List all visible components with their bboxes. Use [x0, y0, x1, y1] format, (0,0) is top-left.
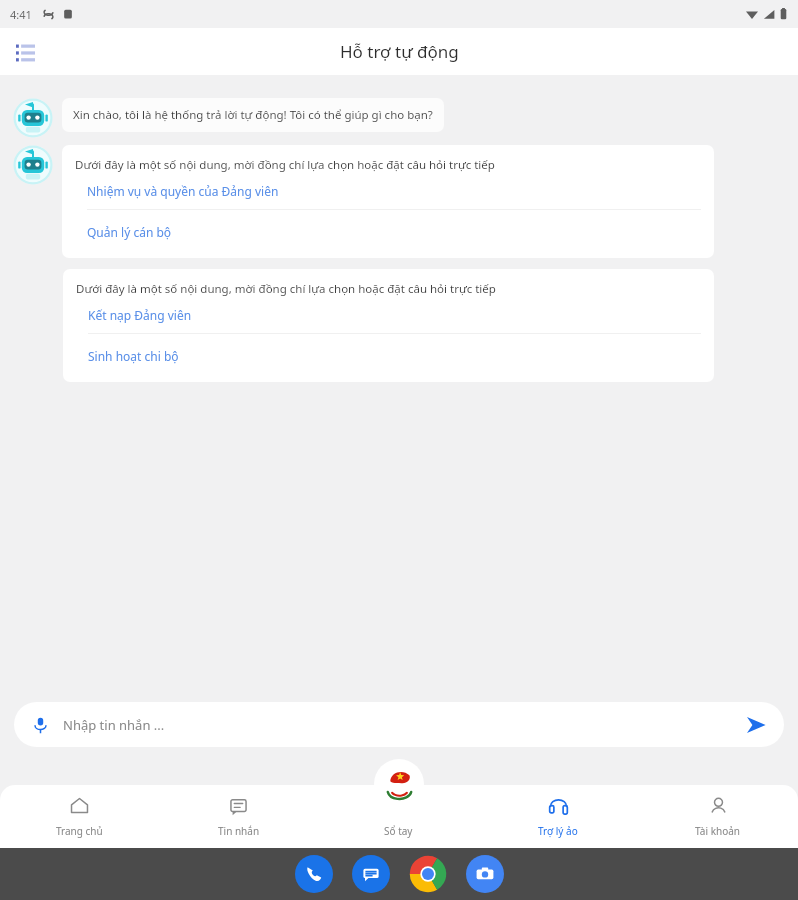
button[interactable]: Sổ tay — [374, 759, 424, 809]
button[interactable]: Trang chủ — [0, 785, 159, 848]
button[interactable]: Voice input — [14, 702, 784, 747]
staticText: Sổ tay — [384, 824, 413, 838]
staticText: Dưới đây là một số nội dung, mời đồng ch… — [75, 157, 495, 173]
button[interactable]: App — [466, 855, 504, 893]
button[interactable]: Chrome — [409, 855, 447, 893]
staticText: Dưới đây là một số nội dung, mời đồng ch… — [76, 281, 496, 297]
staticText: Trợ lý ảo — [538, 824, 578, 838]
staticText: Hỗ trợ tự động — [340, 40, 459, 63]
staticText: Trang chủ — [56, 824, 103, 838]
button[interactable]: Trợ lý ảo — [478, 785, 638, 848]
staticText: Tài khoản — [695, 824, 741, 838]
button[interactable]: Sinh hoạt chi bộ — [88, 334, 701, 378]
staticText: Kết nạp Đảng viên — [88, 307, 192, 323]
staticText: Quản lý cán bộ — [87, 224, 172, 240]
button[interactable]: App — [352, 855, 390, 893]
staticText: Nhiệm vụ và quyền của Đảng viên — [87, 183, 279, 199]
staticText: Xin chào, tôi là hệ thống trả lời tự độn… — [73, 107, 433, 123]
button[interactable]: Sổ tay — [318, 785, 478, 848]
button[interactable]: Quản lý cán bộ — [87, 210, 701, 254]
staticText: Tin nhắn — [218, 824, 260, 838]
button[interactable]: Tin nhắn — [159, 785, 318, 848]
button[interactable]: Menu — [6, 33, 44, 71]
staticText: Nhập tin nhắn ... — [63, 716, 741, 734]
staticText: Sinh hoạt chi bộ — [88, 348, 179, 364]
button[interactable]: Voice input — [27, 712, 53, 738]
button[interactable]: Kết nạp Đảng viên — [88, 297, 701, 333]
button[interactable]: Send — [741, 710, 771, 740]
button[interactable]: Nhiệm vụ và quyền của Đảng viên — [87, 173, 701, 209]
staticText: 4:41 — [10, 7, 32, 22]
button[interactable]: Tài khoản — [638, 785, 798, 848]
button[interactable]: App — [295, 855, 333, 893]
